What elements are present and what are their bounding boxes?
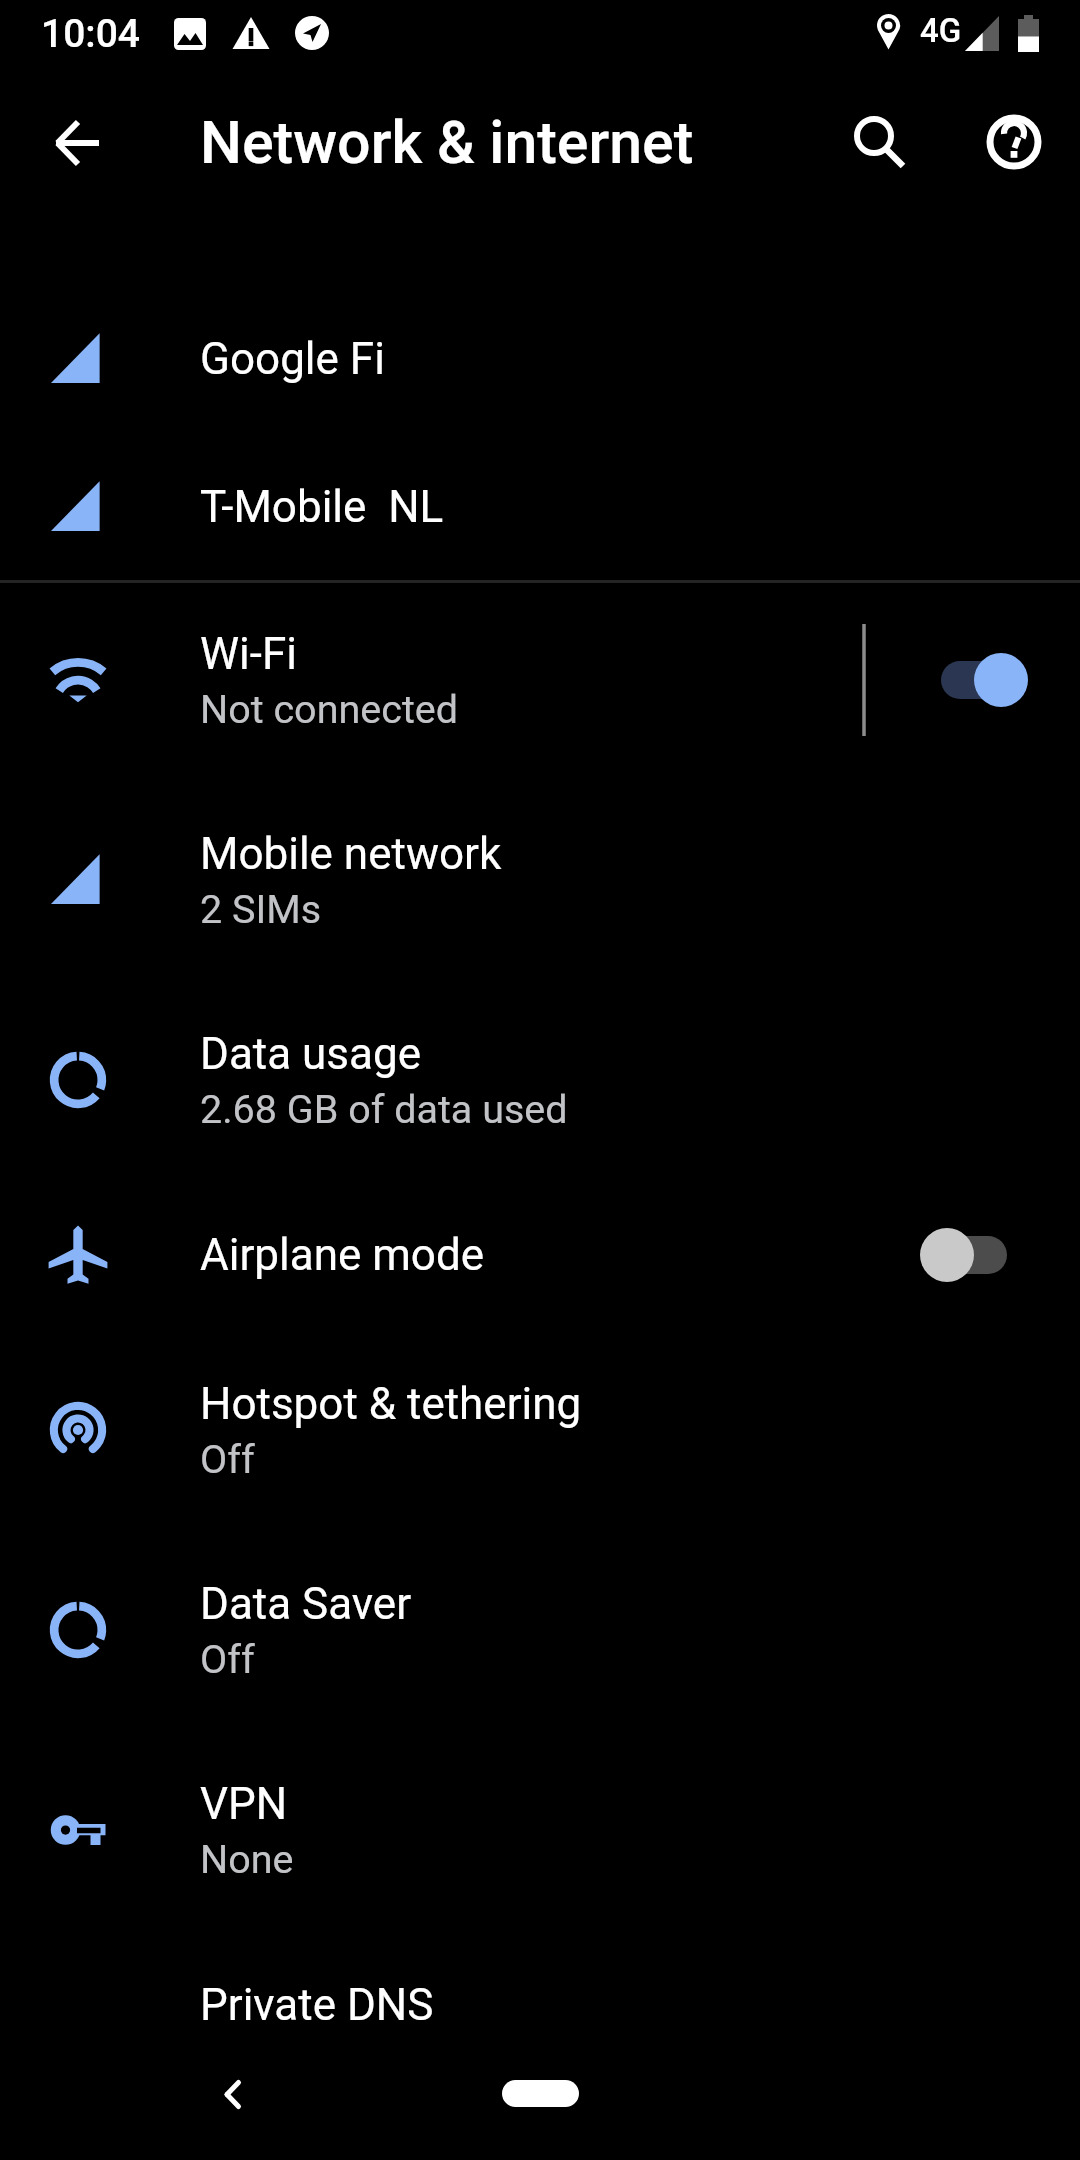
button[interactable]: Wi-Fi — [0, 580, 1080, 780]
button[interactable]: VPN — [0, 1730, 1080, 1930]
button[interactable]: Help — [976, 104, 1052, 180]
button[interactable]: Airplane mode — [0, 1180, 1080, 1330]
staticText: Airplane mode — [200, 1229, 485, 1281]
staticText: VPN — [200, 1778, 288, 1830]
button[interactable]: Mobile network — [0, 780, 1080, 980]
button[interactable]: Airplane mode switch — [854, 1185, 1080, 1325]
staticText: 10:04 — [41, 11, 141, 57]
staticText: Not connected — [200, 686, 459, 732]
staticText: Mobile network — [200, 828, 502, 880]
staticText: Network & internet — [200, 108, 694, 177]
button[interactable]: Hotspot & tethering — [0, 1330, 1080, 1530]
button[interactable]: Google Fi — [0, 285, 1080, 433]
staticText: Hotspot & tethering — [200, 1378, 582, 1430]
button[interactable]: Data usage — [0, 980, 1080, 1180]
button[interactable]: Home — [502, 2080, 579, 2107]
button[interactable]: Search — [843, 106, 919, 182]
button[interactable]: Private DNS — [0, 1930, 1080, 2080]
staticText: Google Fi — [200, 333, 385, 385]
button[interactable]: Navigate up — [38, 106, 114, 182]
staticText: 2 SIMs — [200, 886, 322, 932]
button[interactable]: T-Mobile NL — [0, 433, 1080, 581]
staticText: 4G — [920, 11, 962, 50]
staticText: Off — [200, 1636, 255, 1682]
button[interactable]: Data Saver — [0, 1530, 1080, 1730]
staticText: Off — [200, 1436, 255, 1482]
staticText: T-Mobile NL — [200, 481, 444, 533]
staticText: 2.68 GB of data used — [200, 1086, 568, 1132]
staticText: Data Saver — [200, 1578, 412, 1630]
button[interactable]: Back — [196, 2055, 274, 2133]
staticText: None — [200, 1836, 294, 1882]
button[interactable]: Wi-Fi switch — [854, 610, 1080, 750]
staticText: Wi-Fi — [200, 628, 297, 680]
staticText: Data usage — [200, 1028, 421, 1080]
staticText: Private DNS — [200, 1979, 434, 2031]
